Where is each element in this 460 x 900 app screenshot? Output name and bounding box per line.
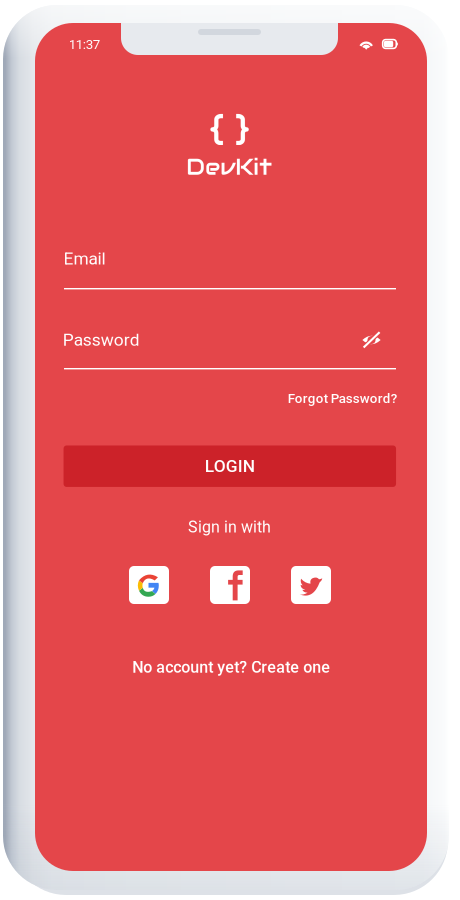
button[interactable]: No account yet? Create one [132,658,330,677]
button[interactable]: Sign in with Facebook [210,566,250,604]
button[interactable]: LOGIN [64,445,396,487]
staticText: Forgot Password? [288,391,397,406]
staticText: Sign in with [188,518,271,536]
staticText: Password [63,330,140,350]
staticText: No account yet? Create one [132,658,330,677]
staticText: DevKit [186,152,272,181]
staticText: LOGIN [205,456,255,476]
staticText: Email [63,248,105,269]
button[interactable]: Show password [354,325,388,355]
staticText: { } [210,108,249,151]
staticText: 11:37 [69,37,100,52]
button[interactable]: Sign in with Twitter [291,566,331,604]
button[interactable]: Forgot Password? [288,391,397,406]
button[interactable]: Sign in with Google [129,566,169,604]
